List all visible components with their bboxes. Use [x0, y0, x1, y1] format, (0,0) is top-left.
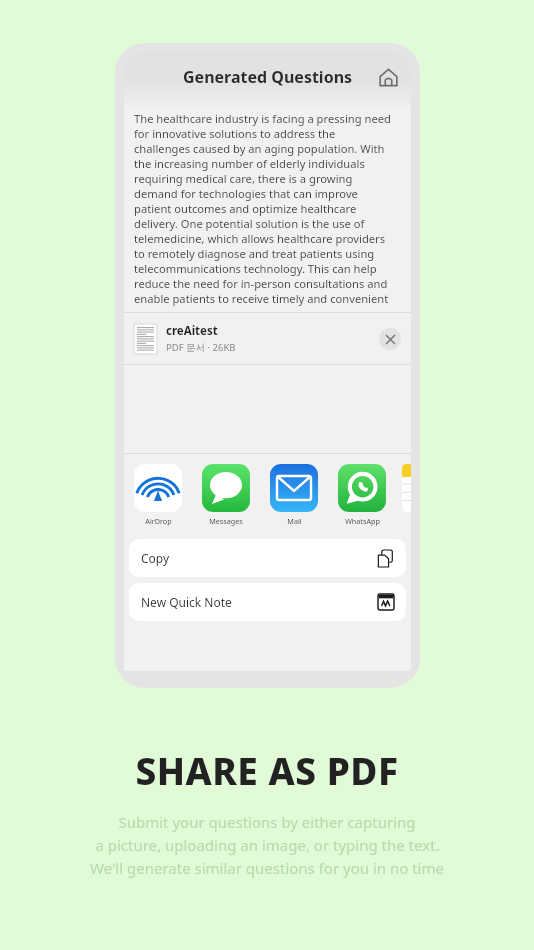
staticText: requiring medical care, there is a growi… [134, 171, 353, 186]
staticText: SHARE AS PDF [135, 745, 399, 795]
button[interactable]: Home [374, 63, 402, 91]
staticText: Generated Questions [183, 66, 353, 88]
button[interactable]: AirDrop [130, 464, 186, 526]
button[interactable]: Messages [198, 464, 254, 526]
staticText: Submit your questions by either capturin… [118, 812, 416, 832]
staticText: PDF 문서 · 26KB [166, 341, 236, 354]
button[interactable]: creAitest [124, 313, 411, 364]
staticText: for innovative solutions to address the [134, 126, 336, 141]
staticText: Copy [141, 550, 170, 566]
staticText: patient outcomes and optimize healthcare [134, 201, 357, 216]
staticText: We'll generate similar questions for you… [90, 858, 444, 878]
staticText: telemedicine, which allows healthcare pr… [134, 231, 386, 246]
button[interactable]: New Quick Note [129, 583, 406, 621]
staticText: Messages [209, 516, 243, 526]
button[interactable]: Copy [129, 539, 406, 577]
staticText: The healthcare industry is facing a pres… [134, 111, 391, 126]
staticText: WhatsApp [345, 516, 380, 526]
staticText: delivery. One potential solution is the … [134, 216, 365, 231]
staticText: to remotely diagnose and treat patients … [134, 246, 375, 261]
staticText: New Quick Note [141, 594, 232, 610]
staticText: AirDrop [145, 516, 172, 526]
staticText: challenges caused by an aging population… [134, 141, 385, 156]
staticText: reduce the need for in-person consultati… [134, 276, 388, 291]
staticText: creAitest [166, 323, 218, 339]
button[interactable]: Mail [266, 464, 322, 526]
staticText: enable patients to receive timely and co… [134, 291, 389, 306]
staticText: Mail [287, 516, 302, 526]
button[interactable]: Notes [402, 464, 411, 512]
button[interactable]: WhatsApp [334, 464, 390, 526]
staticText: the increasing number of elderly individ… [134, 156, 365, 171]
staticText: a picture, uploading an image, or typing… [95, 835, 440, 855]
staticText: demand for technologies that can improve [134, 186, 358, 201]
button[interactable]: Remove attachment [379, 328, 401, 350]
staticText: telecommunications technology. This can … [134, 261, 377, 276]
